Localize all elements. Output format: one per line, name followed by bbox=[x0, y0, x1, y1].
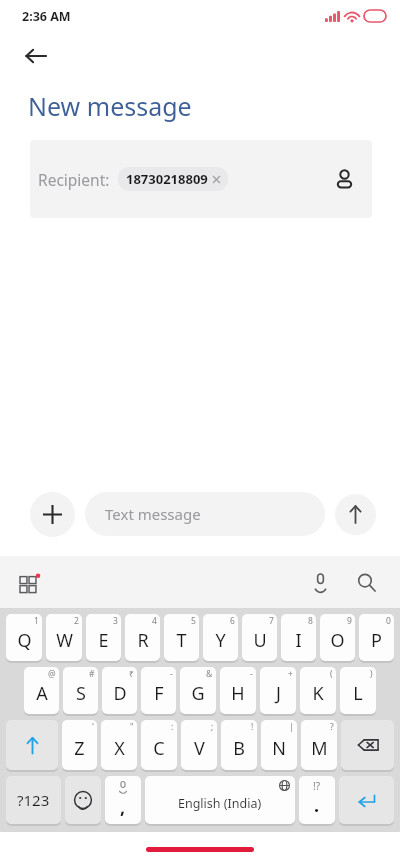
staticText: 5 bbox=[191, 615, 196, 627]
button[interactable]: 9 bbox=[320, 614, 355, 661]
staticText: K bbox=[312, 681, 324, 706]
staticText: English (India) bbox=[178, 795, 262, 812]
staticText: New message bbox=[28, 89, 192, 123]
button[interactable]: " bbox=[101, 720, 137, 770]
staticText: . bbox=[314, 793, 320, 818]
button[interactable]: Search bbox=[346, 562, 386, 602]
button[interactable]: Recipient: bbox=[30, 140, 372, 218]
button[interactable]: Backspace bbox=[341, 720, 394, 770]
button[interactable]: 4 bbox=[125, 614, 160, 661]
staticText: S bbox=[76, 681, 86, 706]
staticText: P bbox=[371, 628, 382, 653]
button[interactable]: 7 bbox=[242, 614, 277, 661]
button[interactable]: ₹ bbox=[102, 667, 137, 714]
button[interactable]: 18730218809 bbox=[118, 167, 228, 191]
button[interactable]: Shift bbox=[6, 720, 58, 770]
button[interactable]: Enter bbox=[339, 776, 394, 824]
button[interactable]: Symbols bbox=[6, 776, 61, 824]
staticText: ' bbox=[92, 721, 94, 733]
button[interactable]: Attach bbox=[30, 492, 75, 537]
staticText: 1 bbox=[34, 615, 39, 627]
staticText: 9 bbox=[347, 615, 352, 627]
staticText: F bbox=[154, 681, 164, 706]
staticText: 3 bbox=[113, 615, 118, 627]
staticText: 2 bbox=[74, 615, 79, 627]
staticText: + bbox=[288, 668, 293, 680]
button[interactable]: # bbox=[63, 667, 98, 714]
staticText: C bbox=[153, 736, 165, 761]
staticText: Recipient: bbox=[38, 169, 110, 190]
button[interactable]: Voice input bbox=[300, 562, 340, 602]
button[interactable]: - bbox=[141, 667, 176, 714]
staticText: J bbox=[276, 681, 281, 706]
staticText: ( bbox=[330, 668, 333, 680]
staticText: H bbox=[231, 681, 245, 706]
staticText: 6 bbox=[230, 615, 235, 627]
button[interactable]: : bbox=[141, 720, 177, 770]
button[interactable]: Send bbox=[335, 494, 376, 535]
staticText: ) bbox=[370, 668, 373, 680]
staticText: B bbox=[233, 736, 245, 761]
staticText: E bbox=[98, 628, 109, 653]
button[interactable]: Comma bbox=[105, 776, 141, 824]
staticText: U bbox=[253, 628, 267, 653]
button[interactable]: ) bbox=[340, 667, 376, 714]
staticText: | bbox=[289, 721, 294, 733]
staticText: 2:36 AM bbox=[22, 8, 71, 25]
button[interactable]: Toolbar menu bbox=[10, 562, 50, 602]
button[interactable]: 6 bbox=[203, 614, 238, 661]
button[interactable]: ; bbox=[181, 720, 217, 770]
button[interactable]: 1 bbox=[6, 614, 42, 661]
button[interactable]: ' bbox=[62, 720, 97, 770]
staticText: " bbox=[130, 721, 134, 733]
button[interactable]: - bbox=[220, 667, 256, 714]
button[interactable]: Text message bbox=[85, 492, 325, 536]
button[interactable]: ( bbox=[300, 667, 336, 714]
staticText: 18730218809 bbox=[126, 170, 208, 188]
button[interactable]: ? bbox=[301, 720, 337, 770]
staticText: Z bbox=[74, 736, 85, 761]
staticText: - bbox=[170, 668, 173, 680]
button[interactable]: Choose contact bbox=[324, 159, 364, 199]
staticText: N bbox=[272, 736, 286, 761]
button[interactable]: Back bbox=[14, 34, 58, 78]
button[interactable]: 8 bbox=[281, 614, 316, 661]
staticText: T bbox=[176, 628, 187, 653]
staticText: D bbox=[113, 681, 127, 706]
staticText: ₹ bbox=[129, 668, 134, 680]
staticText: , bbox=[120, 795, 126, 820]
staticText: 7 bbox=[269, 615, 274, 627]
staticText: - bbox=[250, 668, 253, 680]
button[interactable]: English (India) bbox=[145, 776, 295, 824]
staticText: ! bbox=[251, 721, 254, 733]
staticText: G bbox=[191, 681, 205, 706]
staticText: A bbox=[36, 681, 48, 706]
staticText: O bbox=[330, 628, 345, 653]
staticText: M bbox=[311, 736, 328, 761]
staticText: ?123 bbox=[17, 790, 50, 810]
staticText: ? bbox=[330, 721, 334, 733]
staticText: Text message bbox=[105, 504, 201, 524]
staticText: I bbox=[295, 628, 302, 653]
staticText: 0 bbox=[386, 615, 391, 627]
button[interactable]: 5 bbox=[164, 614, 199, 661]
staticText: : bbox=[171, 721, 174, 733]
staticText: !? bbox=[313, 779, 321, 793]
staticText: X bbox=[114, 736, 125, 761]
button[interactable]: 2 bbox=[46, 614, 82, 661]
button[interactable]: & bbox=[180, 667, 216, 714]
button[interactable]: | bbox=[261, 720, 297, 770]
button[interactable]: 0 bbox=[359, 614, 394, 661]
button[interactable]: Period bbox=[299, 776, 335, 824]
staticText: # bbox=[89, 668, 95, 680]
button[interactable]: 3 bbox=[86, 614, 121, 661]
button[interactable]: @ bbox=[24, 667, 59, 714]
staticText: R bbox=[137, 628, 149, 653]
button[interactable]: Emoji bbox=[65, 776, 101, 824]
staticText: @ bbox=[48, 668, 56, 680]
button[interactable]: + bbox=[260, 667, 296, 714]
staticText: 8 bbox=[308, 615, 313, 627]
button[interactable]: ! bbox=[221, 720, 257, 770]
staticText: 4 bbox=[152, 615, 157, 627]
staticText: W bbox=[56, 628, 73, 653]
